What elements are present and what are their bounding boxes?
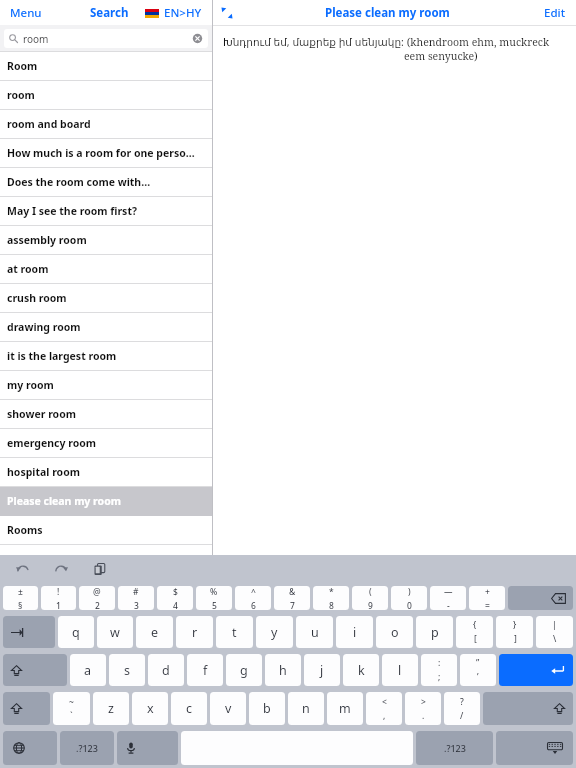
button[interactable]: j [304, 654, 340, 686]
button[interactable]: Paste [89, 559, 109, 579]
button[interactable]: Room [0, 52, 212, 80]
staticText: = [485, 600, 490, 610]
button[interactable]: at room [0, 255, 212, 283]
button[interactable]: EN>HY [139, 1, 212, 25]
button[interactable]: Return [499, 654, 573, 686]
staticText: @ [93, 586, 101, 598]
button[interactable]: crush room [0, 284, 212, 312]
staticText: my room [7, 378, 54, 392]
button[interactable]: v [210, 692, 246, 725]
button[interactable]: a [70, 654, 106, 686]
button[interactable]: shower room [0, 400, 212, 428]
button[interactable]: ~ [53, 692, 90, 725]
button[interactable]: Menu [0, 1, 52, 25]
staticText: j [320, 662, 324, 679]
button[interactable]: x [132, 692, 168, 725]
button[interactable]: % [196, 586, 232, 610]
button[interactable]: d [148, 654, 184, 686]
button[interactable]: } [496, 616, 533, 648]
button[interactable]: Tab [3, 616, 55, 648]
button[interactable]: e [136, 616, 173, 648]
button[interactable]: ( [352, 586, 388, 610]
button[interactable]: q [58, 616, 94, 648]
button[interactable]: # [118, 586, 154, 610]
staticText: Edit [544, 5, 566, 21]
button[interactable]: Next keyboard [3, 731, 57, 765]
button[interactable]: How much is a room for one perso… [0, 139, 212, 167]
button[interactable]: room [4, 29, 208, 48]
button[interactable]: ± [3, 586, 38, 610]
button[interactable]: y [256, 616, 293, 648]
button[interactable]: n [288, 692, 324, 725]
button[interactable]: | [536, 616, 573, 648]
button[interactable]: Shift [483, 692, 573, 725]
staticText: < [382, 696, 387, 708]
button[interactable]: it is the largest room [0, 342, 212, 370]
button[interactable]: z [93, 692, 129, 725]
staticText: z [108, 700, 114, 717]
button[interactable]: Shift [3, 654, 67, 686]
button[interactable]: Search [84, 1, 135, 25]
button[interactable]: Undo [13, 559, 33, 579]
staticText: Please clean my room [325, 5, 450, 21]
button[interactable]: emergency room [0, 429, 212, 457]
button[interactable]: i [336, 616, 373, 648]
button[interactable]: Dictation [117, 731, 178, 765]
staticText: ] [514, 633, 517, 645]
button[interactable]: — [430, 586, 466, 610]
button[interactable]: * [313, 586, 349, 610]
button[interactable]: & [274, 586, 310, 610]
button[interactable]: > [405, 692, 441, 725]
button[interactable]: ^ [235, 586, 271, 610]
button[interactable]: t [216, 616, 253, 648]
button[interactable]: Collapse panel [213, 2, 241, 24]
button[interactable]: h [265, 654, 301, 686]
staticText: .?123 [444, 742, 466, 754]
staticText: i [353, 624, 357, 641]
button[interactable]: Redo [51, 559, 71, 579]
button[interactable]: ? [444, 692, 480, 725]
button[interactable]: s [109, 654, 145, 686]
button[interactable]: assembly room [0, 226, 212, 254]
button[interactable]: ! [41, 586, 76, 610]
button[interactable]: Edit [534, 1, 576, 25]
button[interactable]: room [0, 81, 212, 109]
button[interactable]: room and board [0, 110, 212, 138]
button[interactable]: Does the room come with… [0, 168, 212, 196]
button[interactable]: .?123 [416, 731, 493, 765]
button[interactable]: + [469, 586, 505, 610]
button[interactable]: f [187, 654, 223, 686]
button[interactable]: { [456, 616, 493, 648]
button[interactable]: o [376, 616, 413, 648]
button[interactable]: my room [0, 371, 212, 399]
button[interactable]: l [382, 654, 418, 686]
button[interactable]: u [296, 616, 333, 648]
button[interactable]: hospital room [0, 458, 212, 486]
button[interactable]: m [327, 692, 363, 725]
button[interactable]: r [176, 616, 213, 648]
button[interactable]: ” [460, 654, 496, 686]
button[interactable]: : [421, 654, 457, 686]
button[interactable]: Hide keyboard [496, 731, 573, 765]
button[interactable]: b [249, 692, 285, 725]
button[interactable]: g [226, 654, 262, 686]
button[interactable]: p [416, 616, 453, 648]
staticText: d [162, 662, 170, 679]
button[interactable]: Backspace [508, 586, 573, 610]
button[interactable]: ) [391, 586, 427, 610]
button[interactable]: May I see the room first? [0, 197, 212, 225]
button[interactable]: c [171, 692, 207, 725]
button[interactable]: @ [79, 586, 115, 610]
button[interactable]: k [343, 654, 379, 686]
button[interactable]: drawing room [0, 313, 212, 341]
button[interactable]: Clear search [192, 33, 203, 44]
button[interactable]: Please clean my room [0, 487, 212, 515]
button[interactable]: Rooms [0, 516, 212, 544]
button[interactable]: $ [157, 586, 193, 610]
staticText: } [513, 619, 517, 631]
button[interactable]: Shift [3, 692, 50, 725]
button[interactable]: .?123 [60, 731, 114, 765]
button[interactable]: < [366, 692, 402, 725]
button[interactable]: w [97, 616, 133, 648]
